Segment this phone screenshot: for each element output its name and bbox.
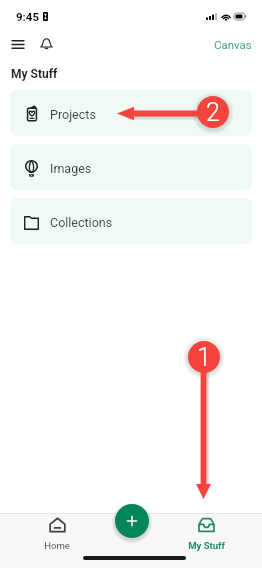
staticText: Collections [50, 215, 113, 230]
staticText: 2 [206, 98, 220, 127]
staticText: My Stuff [11, 67, 58, 81]
button[interactable]: Menu [5, 31, 31, 57]
button[interactable]: Home [35, 516, 79, 556]
button[interactable]: My Stuff [184, 516, 228, 556]
button[interactable]: Images [10, 144, 252, 190]
staticText: Canvas [214, 38, 252, 51]
button[interactable]: Collections [10, 198, 252, 244]
button[interactable]: Canvas [204, 34, 262, 55]
staticText: Images [50, 161, 92, 176]
button[interactable]: Notifications [33, 31, 59, 57]
button[interactable]: Create [115, 504, 149, 538]
staticText: Projects [50, 107, 96, 122]
staticText: 9:45 [16, 10, 40, 23]
staticText: Home [44, 540, 70, 551]
staticText: 1 [197, 343, 211, 372]
button[interactable]: Projects [10, 90, 252, 136]
staticText: My Stuff [188, 540, 225, 551]
